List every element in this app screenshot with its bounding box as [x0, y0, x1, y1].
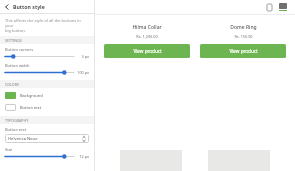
- staticText: Background: [20, 93, 43, 98]
- staticText: Helvetica Neue: [8, 136, 82, 142]
- staticText: SETTINGS: [5, 38, 22, 43]
- button[interactable]: View product: [104, 44, 190, 58]
- staticText: View product: [229, 48, 258, 54]
- staticText: Rs. 1,200.00: [136, 34, 158, 39]
- staticText: This affects the style of all the button…: [5, 18, 89, 33]
- staticText: Button corners: [5, 47, 34, 52]
- button[interactable]: Helvetica Neue: [5, 134, 89, 143]
- staticText: 12 px: [79, 154, 89, 159]
- staticText: Button text: [5, 127, 27, 132]
- button[interactable]: Mobile preview: [263, 1, 275, 13]
- button[interactable]: 12 px: [5, 153, 89, 160]
- button[interactable]: Button text: [0, 103, 94, 112]
- staticText: View product: [133, 48, 162, 54]
- staticText: Dome Ring: [230, 24, 257, 31]
- staticText: 3 px: [81, 54, 89, 59]
- staticText: Size: [5, 147, 13, 152]
- button[interactable]: Back: [0, 0, 13, 13]
- staticText: Rs. 150.00: [234, 34, 253, 39]
- button[interactable]: 3 px: [5, 53, 89, 60]
- staticText: Button text: [20, 105, 42, 110]
- staticText: Hilma Collar: [132, 24, 162, 31]
- button[interactable]: 100 px: [5, 69, 89, 76]
- button[interactable]: Desktop preview: [277, 0, 289, 14]
- staticText: Button style: [13, 3, 45, 10]
- staticText: Button width: [5, 63, 30, 68]
- staticText: TYPOGRAPHY: [5, 118, 29, 123]
- staticText: 100 px: [77, 70, 89, 75]
- staticText: COLORS: [5, 82, 19, 87]
- button[interactable]: View product: [200, 44, 286, 58]
- button[interactable]: Background: [0, 91, 94, 100]
